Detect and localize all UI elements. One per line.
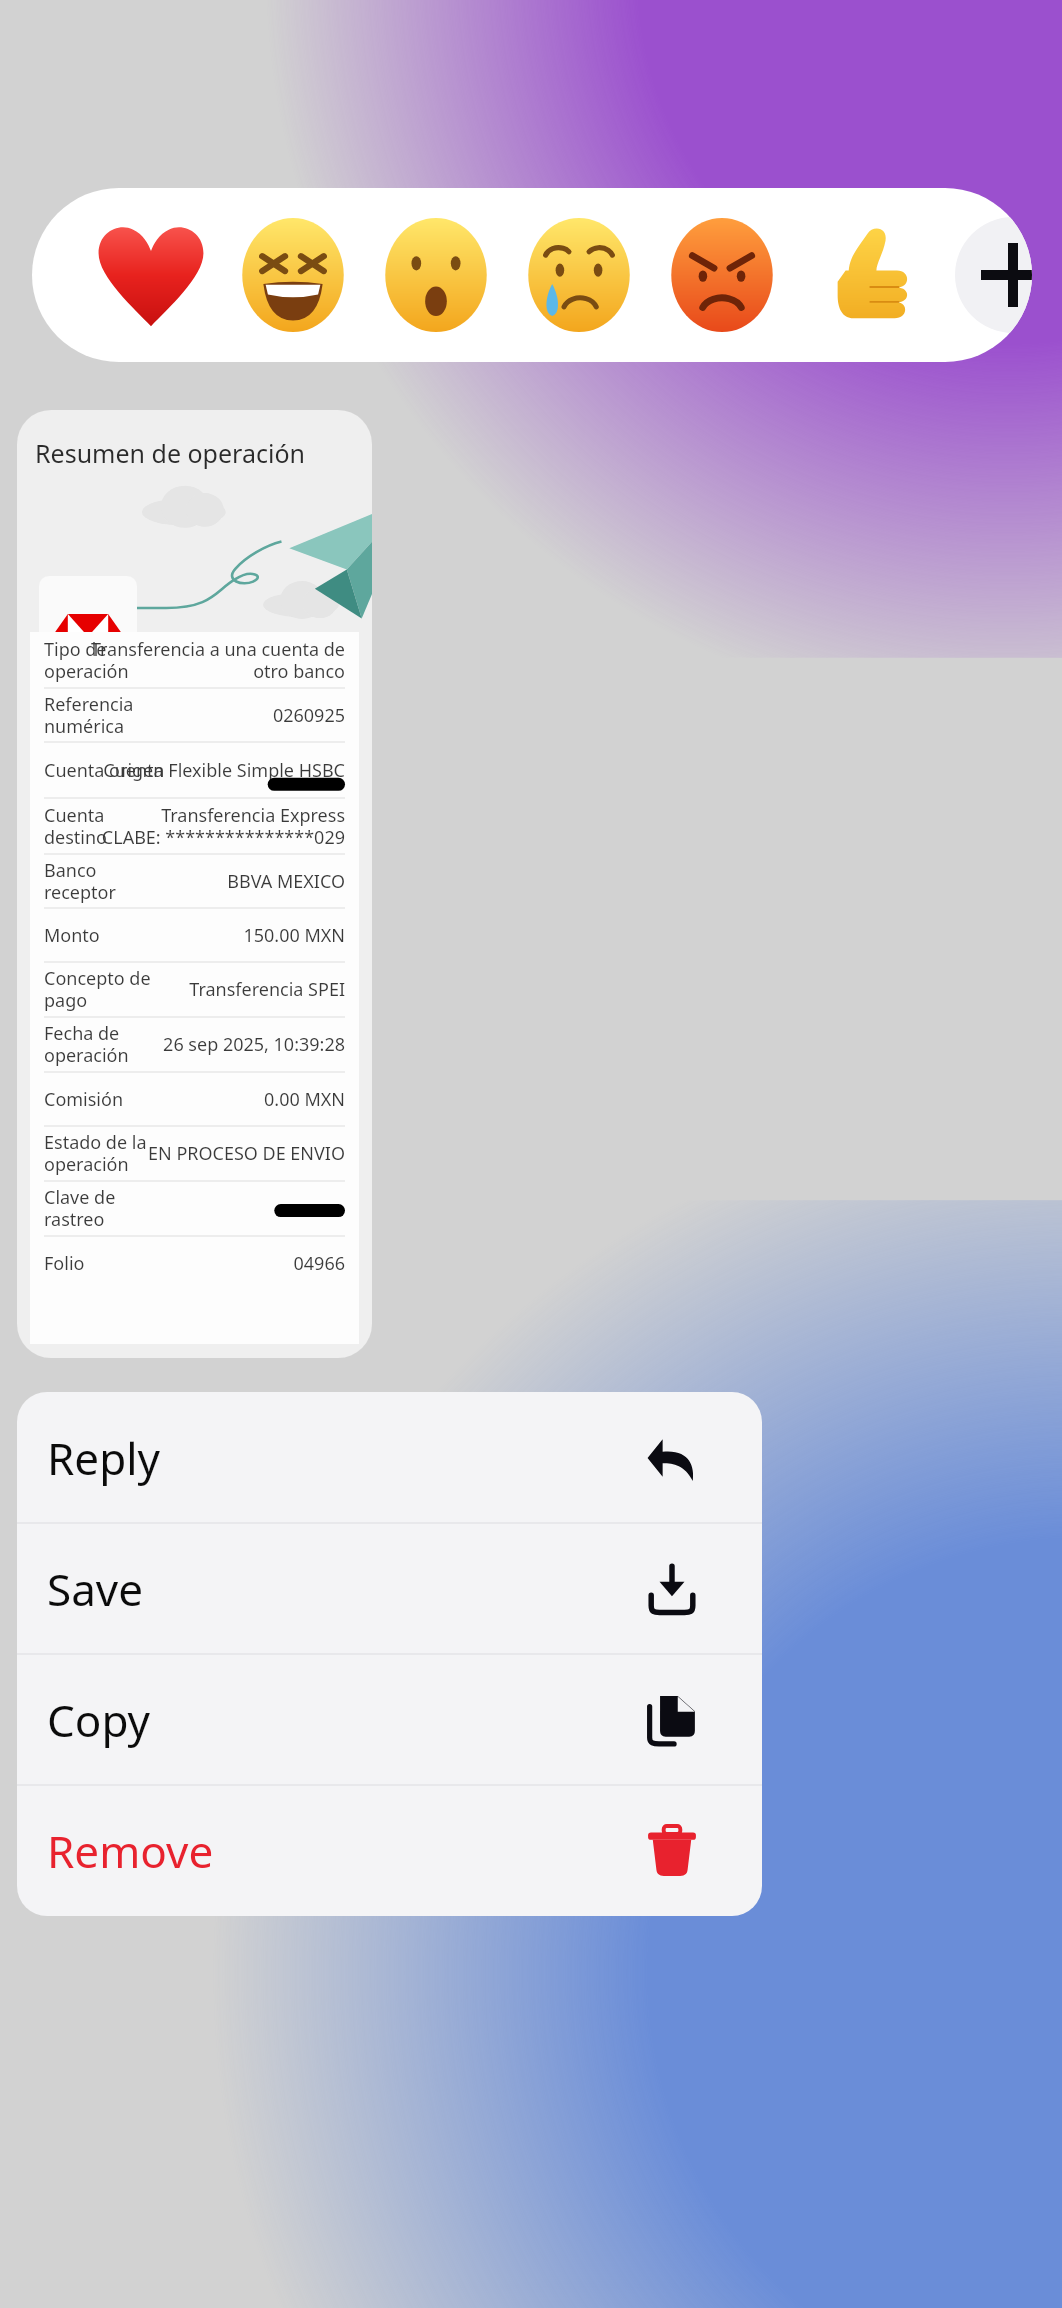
staticText: Estado de la operación <box>44 1130 147 1177</box>
staticText: Fecha de operación <box>44 1021 129 1068</box>
staticText: Banco receptor <box>44 858 116 905</box>
staticText: Tipo de operación <box>44 637 129 684</box>
button[interactable]: Laugh <box>236 218 350 332</box>
staticText: 26 sep 2025, 10:39:28 <box>163 1032 345 1057</box>
button[interactable]: Like <box>808 218 922 332</box>
staticText: Comisión <box>44 1087 124 1112</box>
button[interactable]: Add reaction <box>955 217 1032 333</box>
button[interactable]: Sad <box>522 218 636 332</box>
staticText: 0.00 MXN <box>264 1087 345 1112</box>
staticText: Save <box>47 1559 144 1619</box>
staticText: Referencia numérica <box>44 692 134 739</box>
button[interactable]: Love <box>94 218 208 332</box>
staticText: Cuenta origen <box>44 758 165 783</box>
staticText: Cuenta destino <box>44 803 107 850</box>
button[interactable]: Angry <box>665 218 779 332</box>
staticText: Folio <box>44 1251 85 1276</box>
staticText: 150.00 MXN <box>243 923 345 948</box>
staticText: Clave de rastreo <box>44 1185 116 1232</box>
staticText: Resumen de operación <box>35 436 305 470</box>
staticText: Reply <box>47 1428 161 1488</box>
staticText: EN PROCESO DE ENVIO <box>148 1141 345 1166</box>
staticText: Monto <box>44 923 100 948</box>
staticText: Cuenta Flexible Simple HSBC <box>103 758 345 783</box>
button[interactable]: Resumen de operación <box>17 410 372 1358</box>
staticText: Concepto de pago <box>44 966 151 1013</box>
staticText: BBVA MEXICO <box>227 869 345 894</box>
staticText: 04966 <box>293 1251 345 1276</box>
button[interactable]: Remove <box>17 1785 762 1916</box>
button[interactable]: Copy <box>17 1654 762 1785</box>
staticText: Copy <box>47 1690 151 1750</box>
staticText: Transferencia a una cuenta de otro banco <box>90 637 345 684</box>
staticText: Transferencia Express CLABE: ***********… <box>101 803 345 850</box>
button[interactable]: Save <box>17 1523 762 1654</box>
button[interactable]: Wow <box>379 218 493 332</box>
button[interactable]: Reply <box>17 1392 762 1523</box>
staticText: Transferencia SPEI <box>189 977 345 1002</box>
staticText: 0260925 <box>272 703 345 728</box>
staticText: Remove <box>47 1821 214 1881</box>
